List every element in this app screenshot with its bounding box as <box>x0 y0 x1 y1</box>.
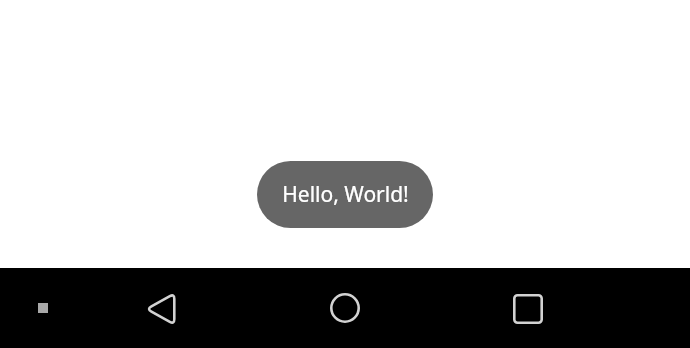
staticText: Hello, World! <box>282 180 409 209</box>
button[interactable]: Recent apps <box>513 294 543 324</box>
button[interactable]: Back <box>145 292 176 326</box>
button[interactable]: Hello, World! <box>257 161 433 228</box>
button[interactable]: Home <box>330 293 360 323</box>
